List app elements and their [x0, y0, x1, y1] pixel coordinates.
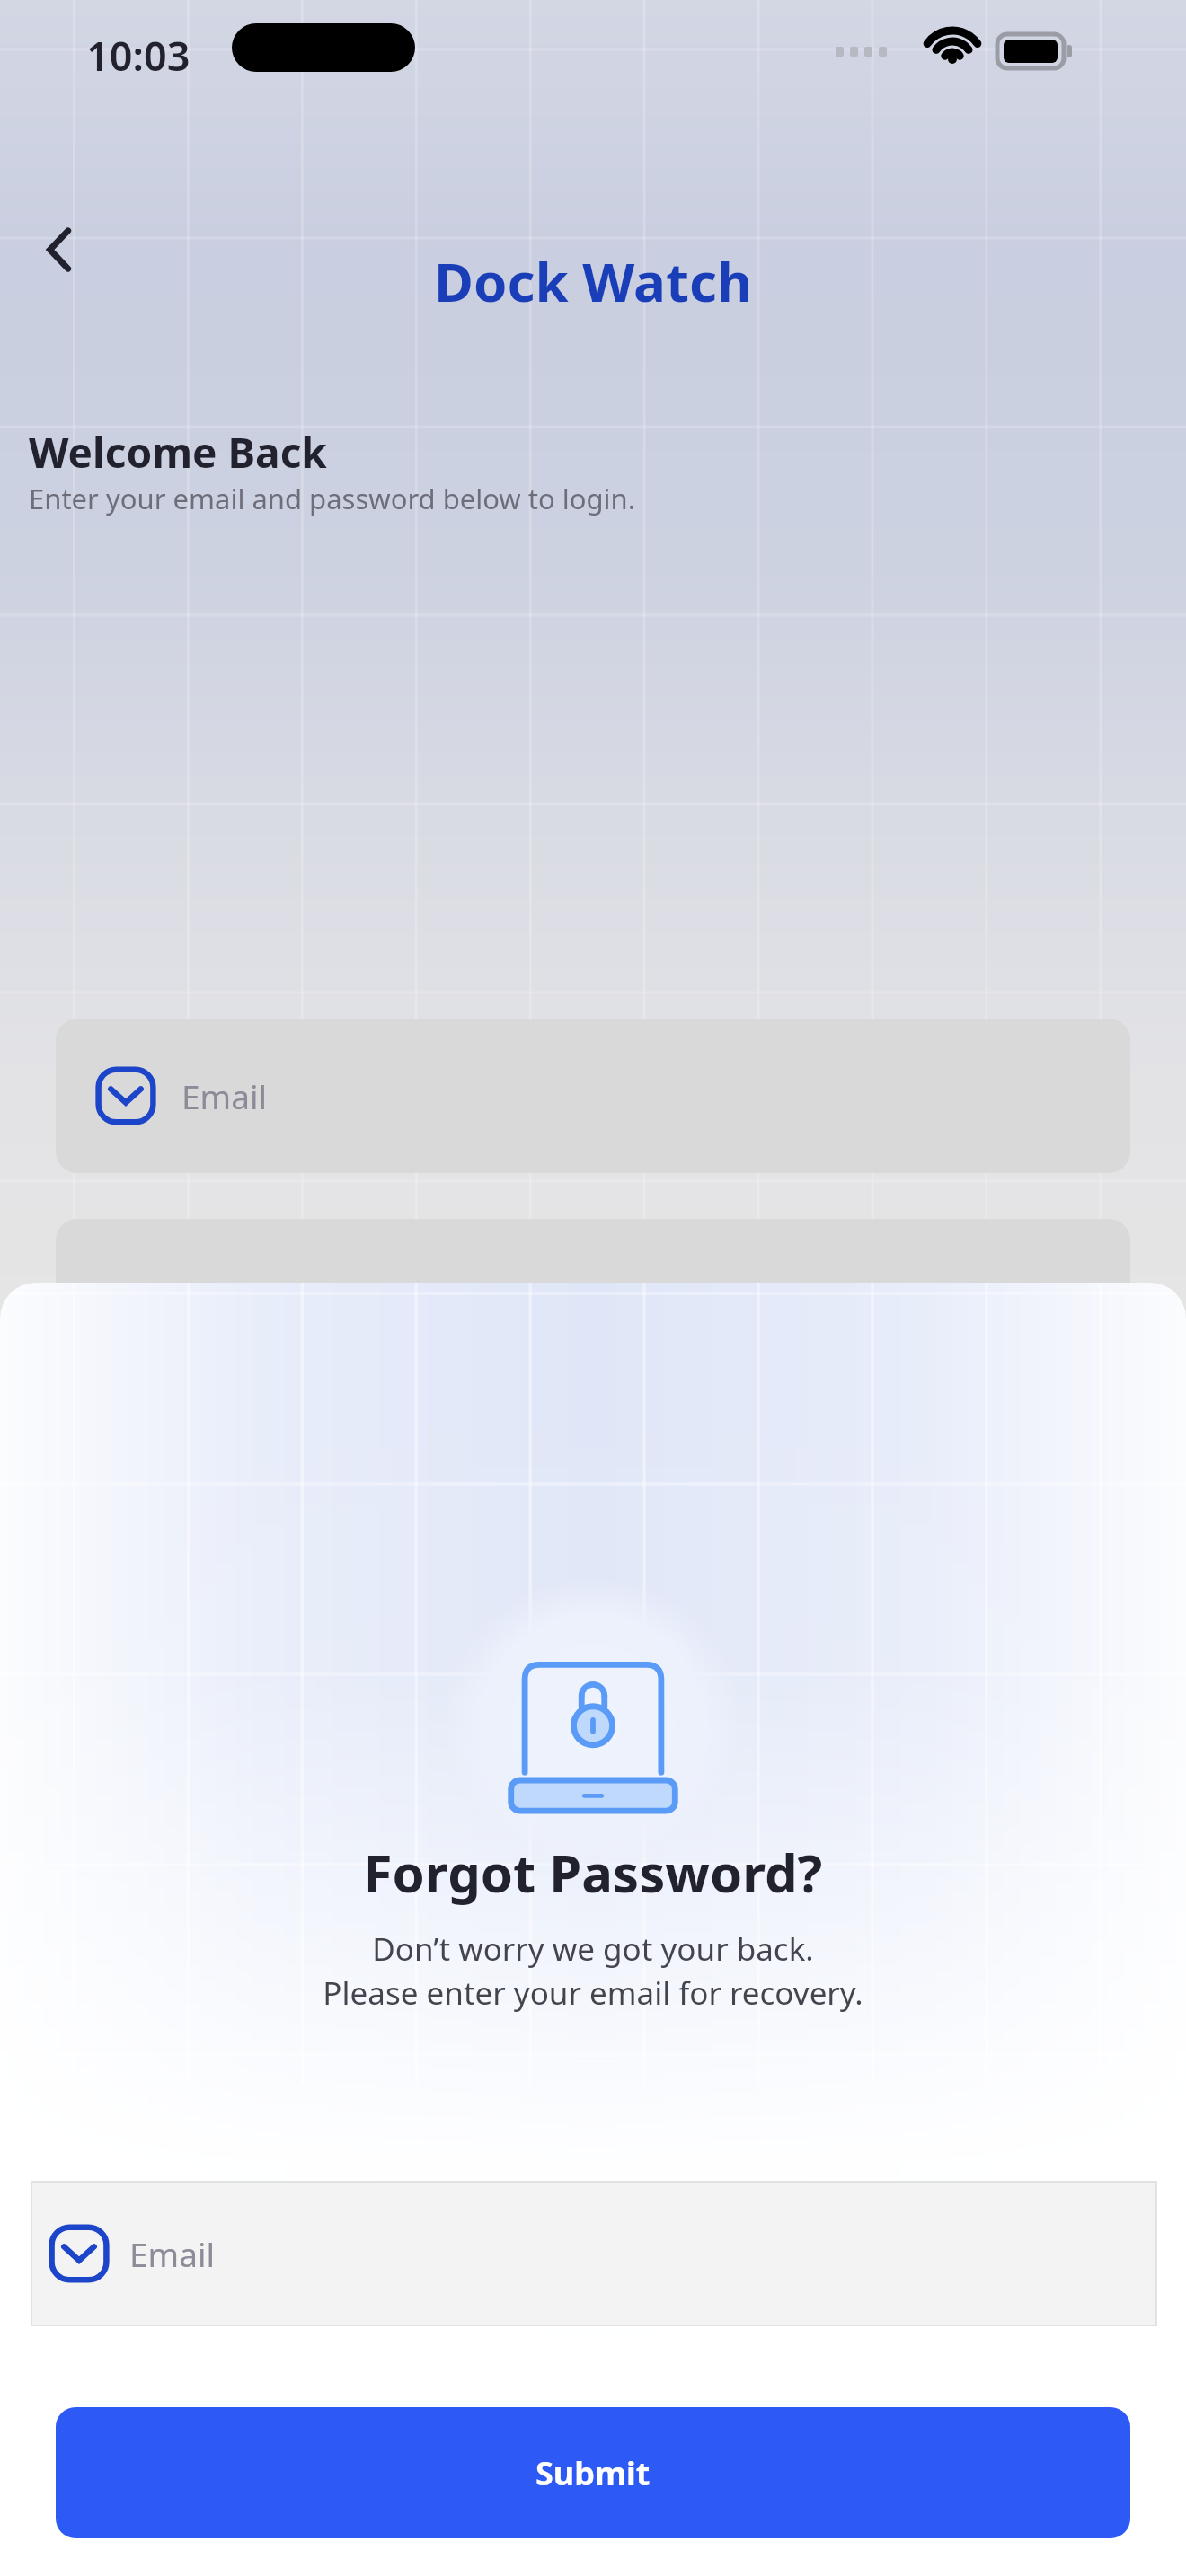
staticText: Email: [181, 1073, 268, 1118]
staticText: Forgot Password?: [0, 1837, 1186, 1908]
button[interactable]: Email: [56, 1019, 1130, 1173]
button[interactable]: Back: [18, 207, 104, 293]
staticText: Welcome Back: [29, 424, 327, 481]
staticText: 10:03: [86, 28, 190, 83]
staticText: Submit: [535, 2451, 651, 2495]
button[interactable]: Email: [31, 2181, 1157, 2326]
button[interactable]: Submit: [56, 2407, 1130, 2538]
staticText: Don’t worry we got your back. Please ent…: [0, 1928, 1186, 2014]
button[interactable]: [56, 1219, 1130, 1373]
staticText: Email: [129, 2231, 216, 2276]
staticText: Dock Watch: [0, 244, 1186, 318]
staticText: Enter your email and password below to l…: [29, 480, 636, 517]
